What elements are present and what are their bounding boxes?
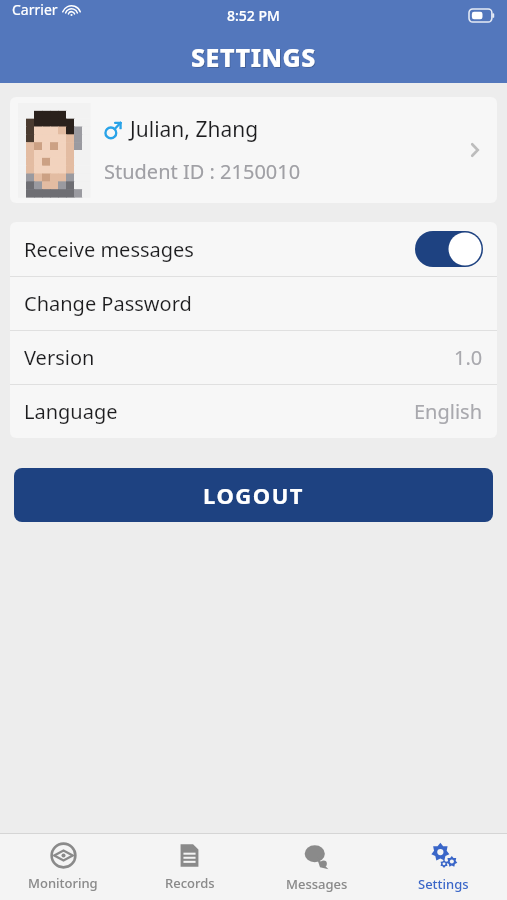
staticText: Receive messages xyxy=(24,236,415,263)
button[interactable]: LOGOUT xyxy=(14,468,493,522)
staticText: Records xyxy=(165,874,215,892)
staticText: Version xyxy=(24,344,454,371)
button[interactable]: Settings xyxy=(380,834,507,900)
staticText: SETTINGS xyxy=(192,41,317,75)
button[interactable]: Messages xyxy=(253,834,380,900)
staticText: SETTINGS xyxy=(191,40,316,74)
staticText: Carrier xyxy=(12,0,58,19)
button[interactable]: Receive messages toggle xyxy=(415,231,483,267)
staticText: Change Password xyxy=(24,290,483,317)
staticText: Monitoring xyxy=(28,874,98,892)
staticText: English xyxy=(414,398,483,425)
button[interactable]: Change Password xyxy=(10,277,497,330)
staticText: Julian, Zhang xyxy=(130,115,259,144)
button[interactable]: Language xyxy=(10,385,497,438)
staticText: Messages xyxy=(286,875,348,893)
button[interactable]: Version xyxy=(10,331,497,384)
staticText: Student ID : 2150010 xyxy=(104,158,301,185)
staticText: LOGOUT xyxy=(203,480,304,510)
button[interactable]: Receive messages xyxy=(10,222,497,276)
button[interactable]: Julian, Zhang xyxy=(10,97,497,203)
button[interactable]: Monitoring xyxy=(0,834,126,900)
staticText: Language xyxy=(24,398,414,425)
staticText: 8:52 PM xyxy=(227,6,280,25)
staticText: Settings xyxy=(418,875,469,893)
staticText: 1.0 xyxy=(454,344,483,371)
button[interactable]: Records xyxy=(126,834,253,900)
